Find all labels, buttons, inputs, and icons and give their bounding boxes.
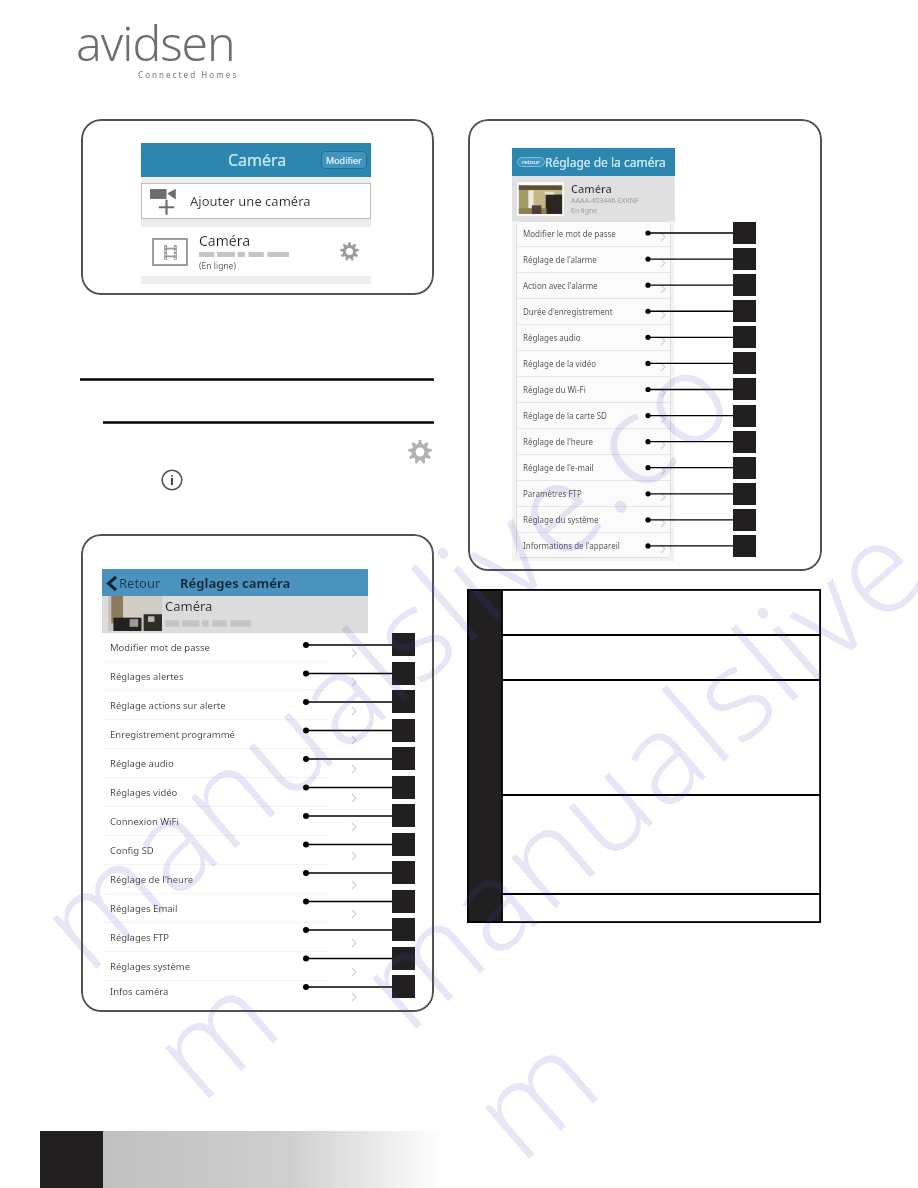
button[interactable]: Réglage de l'heure bbox=[516, 429, 671, 454]
staticText: Action avec l'alarme bbox=[523, 280, 598, 291]
staticText: Réglages Email bbox=[110, 902, 178, 915]
staticText: Réglage actions sur alerte bbox=[110, 699, 226, 712]
button[interactable]: Camera settings bbox=[340, 242, 359, 261]
button[interactable]: Réglage du Wi-Fi bbox=[516, 377, 671, 402]
button[interactable]: Connexion WiFi bbox=[102, 807, 392, 836]
staticText: Réglage du Wi-Fi bbox=[523, 384, 586, 395]
staticText: Réglage de l'heure bbox=[523, 436, 593, 447]
button[interactable]: Réglages audio bbox=[516, 325, 671, 350]
button[interactable]: Caméra bbox=[141, 227, 371, 276]
staticText: Connexion WiFi bbox=[110, 815, 179, 828]
staticText: C o n n e c t e d H o m e s bbox=[138, 69, 237, 80]
staticText: Réglages audio bbox=[523, 332, 581, 343]
staticText: retour bbox=[522, 158, 540, 166]
button[interactable]: Modifier bbox=[326, 154, 362, 166]
staticText: Réglage du système bbox=[523, 514, 599, 525]
staticText: Durée d'enregistrement bbox=[523, 306, 613, 317]
staticText: Réglage de l'heure bbox=[110, 873, 194, 886]
button[interactable]: Réglage de l'e-mail bbox=[516, 455, 671, 480]
button[interactable]: Infos caméra bbox=[102, 981, 392, 1002]
button[interactable]: Modifier le mot de passe bbox=[516, 221, 671, 246]
button[interactable]: Modifier mot de passe bbox=[102, 633, 392, 662]
button[interactable]: Réglages système bbox=[102, 952, 392, 981]
staticText: Réglage de l'e-mail bbox=[523, 462, 594, 473]
button[interactable]: Réglage du système bbox=[516, 507, 671, 532]
staticText: avidsen bbox=[76, 10, 235, 75]
staticText: Ajouter une caméra bbox=[190, 192, 311, 210]
staticText: Caméra bbox=[571, 181, 612, 196]
staticText: Caméra bbox=[199, 231, 251, 250]
button[interactable]: Durée d'enregistrement bbox=[516, 299, 671, 324]
button[interactable]: Réglages vidéo bbox=[102, 778, 392, 807]
staticText: Réglage de la vidéo bbox=[523, 358, 597, 369]
staticText: Modifier mot de passe bbox=[110, 641, 210, 654]
button[interactable]: Réglages FTP bbox=[102, 923, 392, 952]
staticText: Modifier bbox=[326, 154, 362, 166]
button[interactable]: Enregistrement programmé bbox=[102, 720, 392, 749]
staticText: Infos caméra bbox=[110, 985, 169, 998]
button[interactable]: Paramètres FTP bbox=[516, 481, 671, 506]
button[interactable]: Ajouter une caméra bbox=[141, 183, 371, 219]
staticText: Réglages système bbox=[110, 960, 191, 973]
staticText: Réglage de la carte SD bbox=[523, 410, 607, 421]
staticText: Retour bbox=[119, 574, 161, 592]
button[interactable]: Réglage de la vidéo bbox=[516, 351, 671, 376]
staticText: En ligne bbox=[571, 206, 598, 216]
button[interactable]: Action avec l'alarme bbox=[516, 273, 671, 298]
staticText: Réglage de la caméra bbox=[545, 154, 666, 170]
button[interactable]: Réglage de l'heure bbox=[102, 865, 392, 894]
staticText: (En ligne) bbox=[199, 260, 236, 272]
staticText: Réglage audio bbox=[110, 757, 174, 770]
staticText: Réglages caméra bbox=[180, 574, 291, 592]
staticText: manualslive.com bbox=[319, 332, 918, 1188]
button[interactable]: avidsen bbox=[76, 10, 235, 86]
button[interactable]: Réglage de l'alarme bbox=[516, 247, 671, 272]
staticText: Informations de l'appareil bbox=[523, 540, 620, 551]
staticText: Config SD bbox=[110, 844, 154, 857]
staticText: Réglages alertes bbox=[110, 670, 184, 683]
button[interactable]: Réglage audio bbox=[102, 749, 392, 778]
button[interactable]: Réglage actions sur alerte bbox=[102, 691, 392, 720]
staticText: manualslive.com bbox=[0, 272, 918, 1134]
button[interactable]: Réglages Email bbox=[102, 894, 392, 923]
button[interactable]: Réglage de la carte SD bbox=[516, 403, 671, 428]
staticText: Enregistrement programmé bbox=[110, 728, 235, 741]
button[interactable]: Settings bbox=[408, 440, 432, 464]
staticText: Caméra bbox=[165, 597, 213, 615]
staticText: Réglages FTP bbox=[110, 931, 170, 944]
button[interactable]: Réglages alertes bbox=[102, 662, 392, 691]
staticText: Réglages vidéo bbox=[110, 786, 178, 799]
staticText: Paramètres FTP bbox=[523, 488, 582, 499]
staticText: Modifier le mot de passe bbox=[523, 228, 616, 239]
staticText: AAAA-403446-EXKNF bbox=[571, 196, 639, 206]
staticText: Caméra bbox=[228, 149, 287, 171]
button[interactable]: Information bbox=[161, 469, 183, 491]
staticText: Réglage de l'alarme bbox=[523, 254, 597, 265]
button[interactable]: Config SD bbox=[102, 836, 392, 865]
button[interactable]: Informations de l'appareil bbox=[516, 533, 671, 558]
button[interactable]: retour bbox=[522, 158, 540, 166]
staticText: i bbox=[170, 471, 174, 489]
